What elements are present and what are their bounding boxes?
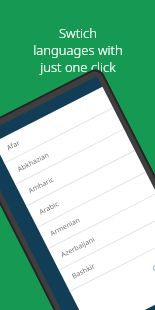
staticText: Amharic	[27, 174, 56, 196]
staticText: Azerbaijani	[59, 234, 97, 260]
button[interactable]: Amharic	[15, 130, 135, 206]
button[interactable]: Phone preview showing language chooser	[0, 66, 155, 310]
button[interactable]: Afar	[0, 87, 113, 164]
button[interactable]: Arabic	[26, 151, 146, 228]
staticText: Afar	[5, 138, 22, 153]
button[interactable]: Abkhazian	[5, 108, 124, 185]
staticText: Swtich languages with just one click	[33, 24, 123, 76]
staticText: Armenian	[48, 215, 82, 239]
staticText: CLOSE	[151, 255, 155, 274]
staticText: Bashkir	[70, 261, 97, 282]
button[interactable]: Azerbaijani	[48, 194, 155, 271]
staticText: Arabic	[38, 199, 61, 217]
staticText: Abkhazian	[16, 150, 52, 175]
button[interactable]: Armenian	[37, 172, 155, 249]
button[interactable]: CLOSE	[151, 255, 155, 274]
button[interactable]: Bashkir	[59, 215, 155, 292]
